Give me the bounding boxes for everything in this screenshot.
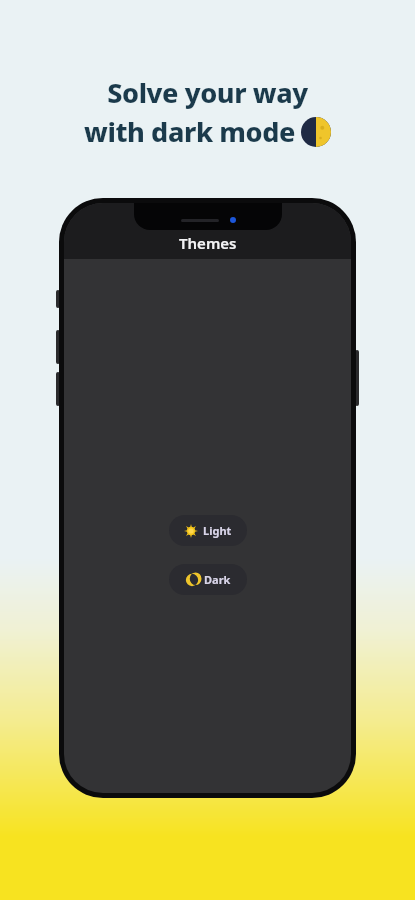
button[interactable]: Light bbox=[169, 515, 247, 546]
button[interactable]: Dark bbox=[169, 564, 247, 595]
staticText: Light bbox=[203, 523, 232, 538]
staticText: Dark bbox=[204, 572, 231, 587]
staticText: Themes bbox=[179, 233, 237, 253]
staticText: Solve your way bbox=[107, 74, 308, 111]
staticText: with dark mode bbox=[84, 113, 295, 150]
